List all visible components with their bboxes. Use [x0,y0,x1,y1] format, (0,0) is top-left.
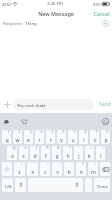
staticText: Send [99,101,111,108]
button[interactable]: 4 [35,130,44,144]
staticText: 2:46 PM [47,1,63,7]
button[interactable]: # [19,146,28,160]
staticText: @ [12,146,16,150]
button[interactable]: / [88,162,98,176]
button[interactable]: 12# [2,178,13,192]
button[interactable]: Shift [2,162,12,176]
staticText: Recipient: [3,20,23,26]
button[interactable]: Keyboard theme [19,116,30,127]
button[interactable]: Cancel [93,8,110,18]
staticText: g [55,152,59,159]
button[interactable]: Voice input [15,178,26,192]
staticText: q [5,136,9,143]
button[interactable]: 5 [46,130,55,144]
staticText: 2 [18,130,21,134]
staticText: d [33,152,37,159]
staticText: & [57,146,60,150]
staticText: " [34,162,36,166]
staticText: ; [59,162,60,166]
button[interactable]: Add recipient [100,18,110,28]
button[interactable]: Space [28,178,83,192]
staticText: b [67,168,71,175]
staticText: u [71,136,75,143]
staticText: Thing [25,20,37,26]
staticText: j [78,152,80,159]
button[interactable]: Send [99,96,111,113]
button[interactable]: 1 [2,130,11,144]
button[interactable]: Emoji [100,116,111,127]
staticText: ( [102,146,104,150]
button[interactable]: Stickers [1,116,12,127]
staticText: l [100,152,102,159]
staticText: t [50,136,52,143]
staticText: c [44,168,47,175]
staticText: AT&T [2,2,12,7]
button[interactable]: ! [14,162,25,176]
button[interactable]: Backspace [100,162,110,176]
button[interactable]: ; [52,162,62,176]
staticText: * [69,146,71,150]
staticText: You rock dude [17,102,46,108]
button[interactable]: $ [30,146,39,160]
staticText: z [18,168,21,175]
staticText: p [104,136,108,143]
button[interactable]: 6 [57,130,66,144]
staticText: 9 [95,130,98,134]
staticText: r [38,136,41,143]
button[interactable]: * [63,146,72,160]
staticText: n [79,168,83,175]
button[interactable]: . [85,178,92,192]
staticText: . [88,181,90,187]
staticText: 7 [73,130,76,134]
button[interactable]: ( [96,146,105,160]
staticText: 3 [29,130,32,134]
staticText: 6 [62,130,65,134]
button[interactable]: ' [64,162,74,176]
button[interactable]: @ [7,146,17,160]
staticText: % [46,146,49,150]
staticText: New Message [38,10,74,17]
button[interactable]: Add attachment [2,99,13,110]
staticText: 12# [4,184,12,189]
staticText: ! [21,162,22,166]
staticText: s [22,152,25,159]
button[interactable]: 9 [90,130,99,144]
staticText: f [45,152,47,159]
staticText: : [47,162,48,166]
staticText: # [24,146,27,150]
staticText: 0 [106,130,109,134]
button[interactable]: 2 [13,130,22,144]
button[interactable]: 0 [101,130,110,144]
button[interactable]: : [40,162,50,176]
staticText: m [91,168,96,175]
button[interactable]: 8 [79,130,88,144]
staticText: a [11,152,14,159]
button[interactable]: & [52,146,61,160]
button[interactable]: 3 [24,130,33,144]
staticText: o [93,136,97,143]
button[interactable]: You rock dude [13,99,94,110]
staticText: Done [97,183,108,189]
staticText: h [66,152,70,159]
staticText: ? [82,162,84,166]
staticText: - [80,146,82,150]
button[interactable]: - [74,146,83,160]
button[interactable]: " [27,162,38,176]
staticText: 82% [93,2,101,7]
button[interactable]: Done [94,178,110,192]
staticText: i [83,136,85,143]
staticText: Cancel [93,10,110,17]
button[interactable]: ? [76,162,86,176]
staticText: 4 [40,130,43,134]
button[interactable]: 7 [68,130,77,144]
button[interactable]: % [41,146,50,160]
button[interactable]: + [85,146,94,160]
staticText: w [15,136,20,143]
staticText: $ [35,146,38,150]
staticText: v [56,168,59,175]
staticText: x [31,168,34,175]
staticText: + [90,146,93,150]
staticText: 8 [84,130,87,134]
staticText: k [88,152,91,159]
staticText: e [27,136,30,143]
